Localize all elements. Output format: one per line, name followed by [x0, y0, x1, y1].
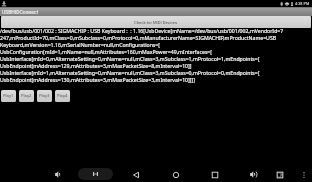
staticText: UsbEndpoint[mAddress=129,mAttributes=3,m…: [0, 62, 192, 69]
button[interactable]: Check for MIDI Devices: [1, 16, 311, 28]
staticText: Play4: [57, 93, 68, 99]
button[interactable]: More options: [296, 167, 312, 182]
staticText: UsbInterface[mId=0,mAlternateSetting=0,m…: [0, 55, 260, 62]
staticText: /dev/bus/usb/001/002 : SIGMACHIP : USB K…: [0, 27, 284, 34]
staticText: 247,mProductId=70,mClass=0,mSubclass=0,m…: [0, 34, 277, 41]
staticText: Play1: [3, 93, 14, 99]
staticText: Check for MIDI Devices: [134, 20, 178, 25]
staticText: Play3: [39, 93, 50, 99]
button[interactable]: Recents: [207, 167, 223, 182]
button[interactable]: Volume up: [245, 167, 261, 182]
staticText: Play2: [21, 93, 32, 99]
staticText: Keyboard,mVersion=1.16,mSerialNumber=nul…: [0, 41, 160, 48]
staticText: UsbEndpoint[mAddress=130,mAttributes=3,m…: [0, 76, 195, 83]
button[interactable]: Home: [168, 167, 184, 182]
button[interactable]: Resize window: [78, 168, 113, 180]
button[interactable]: Play4: [55, 90, 70, 102]
button[interactable]: Play3: [37, 90, 52, 102]
staticText: 4:38 PM: [295, 1, 310, 6]
staticText: UsbConfiguration[mId=1,mName=null,mAttri…: [0, 48, 213, 55]
button[interactable]: Play1: [1, 90, 16, 102]
staticText: USBHIDConnect: [2, 9, 39, 15]
button[interactable]: Back: [128, 167, 144, 182]
staticText: UsbInterface[mId=1,mAlternateSetting=0,m…: [0, 69, 260, 76]
button[interactable]: USBHIDConnect: [0, 7, 312, 16]
button[interactable]: Play2: [19, 90, 34, 102]
button[interactable]: Screenshot: [272, 167, 288, 182]
button[interactable]: Volume down: [50, 167, 66, 182]
